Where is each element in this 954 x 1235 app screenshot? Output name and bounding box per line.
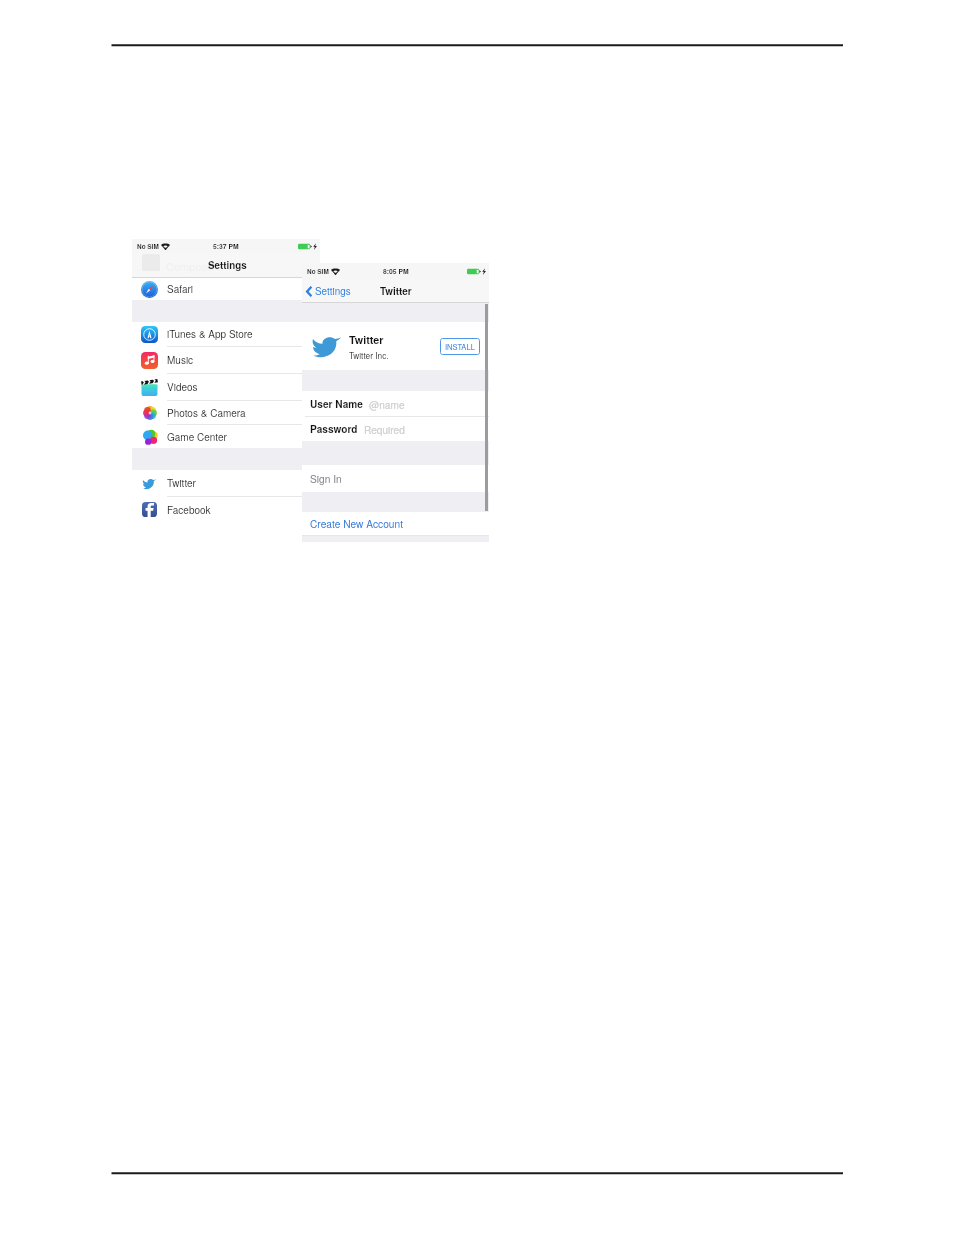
staticText: Required (364, 422, 405, 436)
staticText: INSTALL (445, 341, 475, 352)
staticText: @name (369, 397, 405, 411)
button[interactable]: Facebook (132, 497, 320, 522)
staticText: User Name (310, 397, 363, 411)
button[interactable]: Music (132, 347, 320, 373)
staticText: No SIM (307, 267, 329, 276)
button[interactable]: Game Center (132, 425, 320, 448)
staticText: Twitter (349, 332, 384, 347)
staticText: Safari (167, 282, 194, 296)
staticText: Settings (315, 284, 351, 298)
staticText: Music (167, 353, 194, 367)
staticText: Photos & Camera (167, 406, 246, 420)
button[interactable]: Sign In (302, 465, 489, 492)
staticText: 8:05 PM (383, 266, 409, 276)
staticText: Game Center (167, 430, 227, 444)
button[interactable]: INSTALL (440, 338, 480, 355)
button[interactable]: Videos (132, 374, 320, 400)
staticText: iTunes & App Store (167, 327, 253, 341)
staticText: Settings (208, 258, 247, 272)
button[interactable]: Twitter (132, 470, 320, 496)
button[interactable]: Password (302, 417, 489, 441)
staticText: Twitter Inc. (349, 349, 389, 361)
staticText: 5:37 PM (213, 241, 239, 251)
staticText: Password (310, 422, 358, 436)
staticText: Videos (167, 380, 198, 394)
button[interactable]: Safari (132, 278, 320, 300)
button[interactable]: User Name (302, 391, 489, 416)
button[interactable]: Photos & Camera (132, 401, 320, 424)
button[interactable]: iTunes & App Store (132, 322, 320, 346)
staticText: Sign In (310, 471, 342, 486)
button[interactable]: Twitter (302, 322, 489, 370)
staticText: Twitter (167, 476, 196, 490)
staticText: Compose (166, 258, 214, 274)
staticText: Twitter (380, 284, 412, 298)
staticText: Facebook (167, 503, 211, 517)
button[interactable]: Back to Settings (302, 281, 355, 301)
staticText: No SIM (137, 242, 159, 251)
button[interactable]: Create New Account (302, 512, 489, 535)
staticText: Create New Account (310, 516, 403, 531)
